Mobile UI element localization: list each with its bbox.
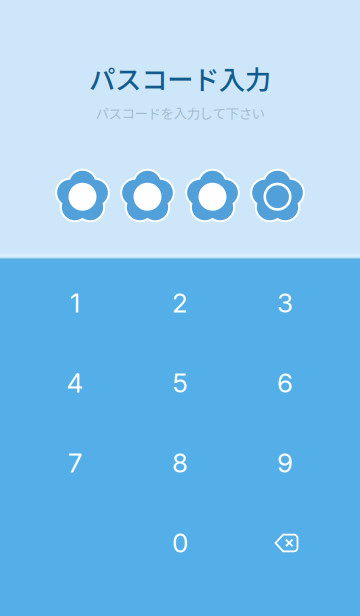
button[interactable]: Delete — [232, 503, 337, 583]
button[interactable]: 5 — [127, 343, 232, 423]
staticText: 0 — [172, 527, 188, 559]
staticText: パスコードを入力して下さい — [95, 103, 264, 123]
staticText: 5 — [172, 367, 187, 399]
button[interactable]: 8 — [127, 423, 232, 503]
button[interactable]: 6 — [232, 343, 337, 423]
button[interactable]: 2 — [127, 263, 232, 343]
button[interactable]: 7 — [22, 423, 127, 503]
button[interactable]: 3 — [232, 263, 337, 343]
staticText: 3 — [277, 287, 293, 319]
button[interactable]: 4 — [22, 343, 127, 423]
staticText: 7 — [68, 447, 82, 479]
button[interactable]: 0 — [127, 503, 232, 583]
button[interactable]: 9 — [232, 423, 337, 503]
staticText: 1 — [70, 287, 80, 319]
staticText: 8 — [172, 447, 188, 479]
staticText: 9 — [277, 447, 293, 479]
button[interactable]: 1 — [22, 263, 127, 343]
staticText: 6 — [277, 367, 293, 399]
staticText: 2 — [172, 287, 188, 319]
staticText: パスコード入力 — [89, 59, 271, 97]
staticText: 4 — [66, 367, 83, 399]
